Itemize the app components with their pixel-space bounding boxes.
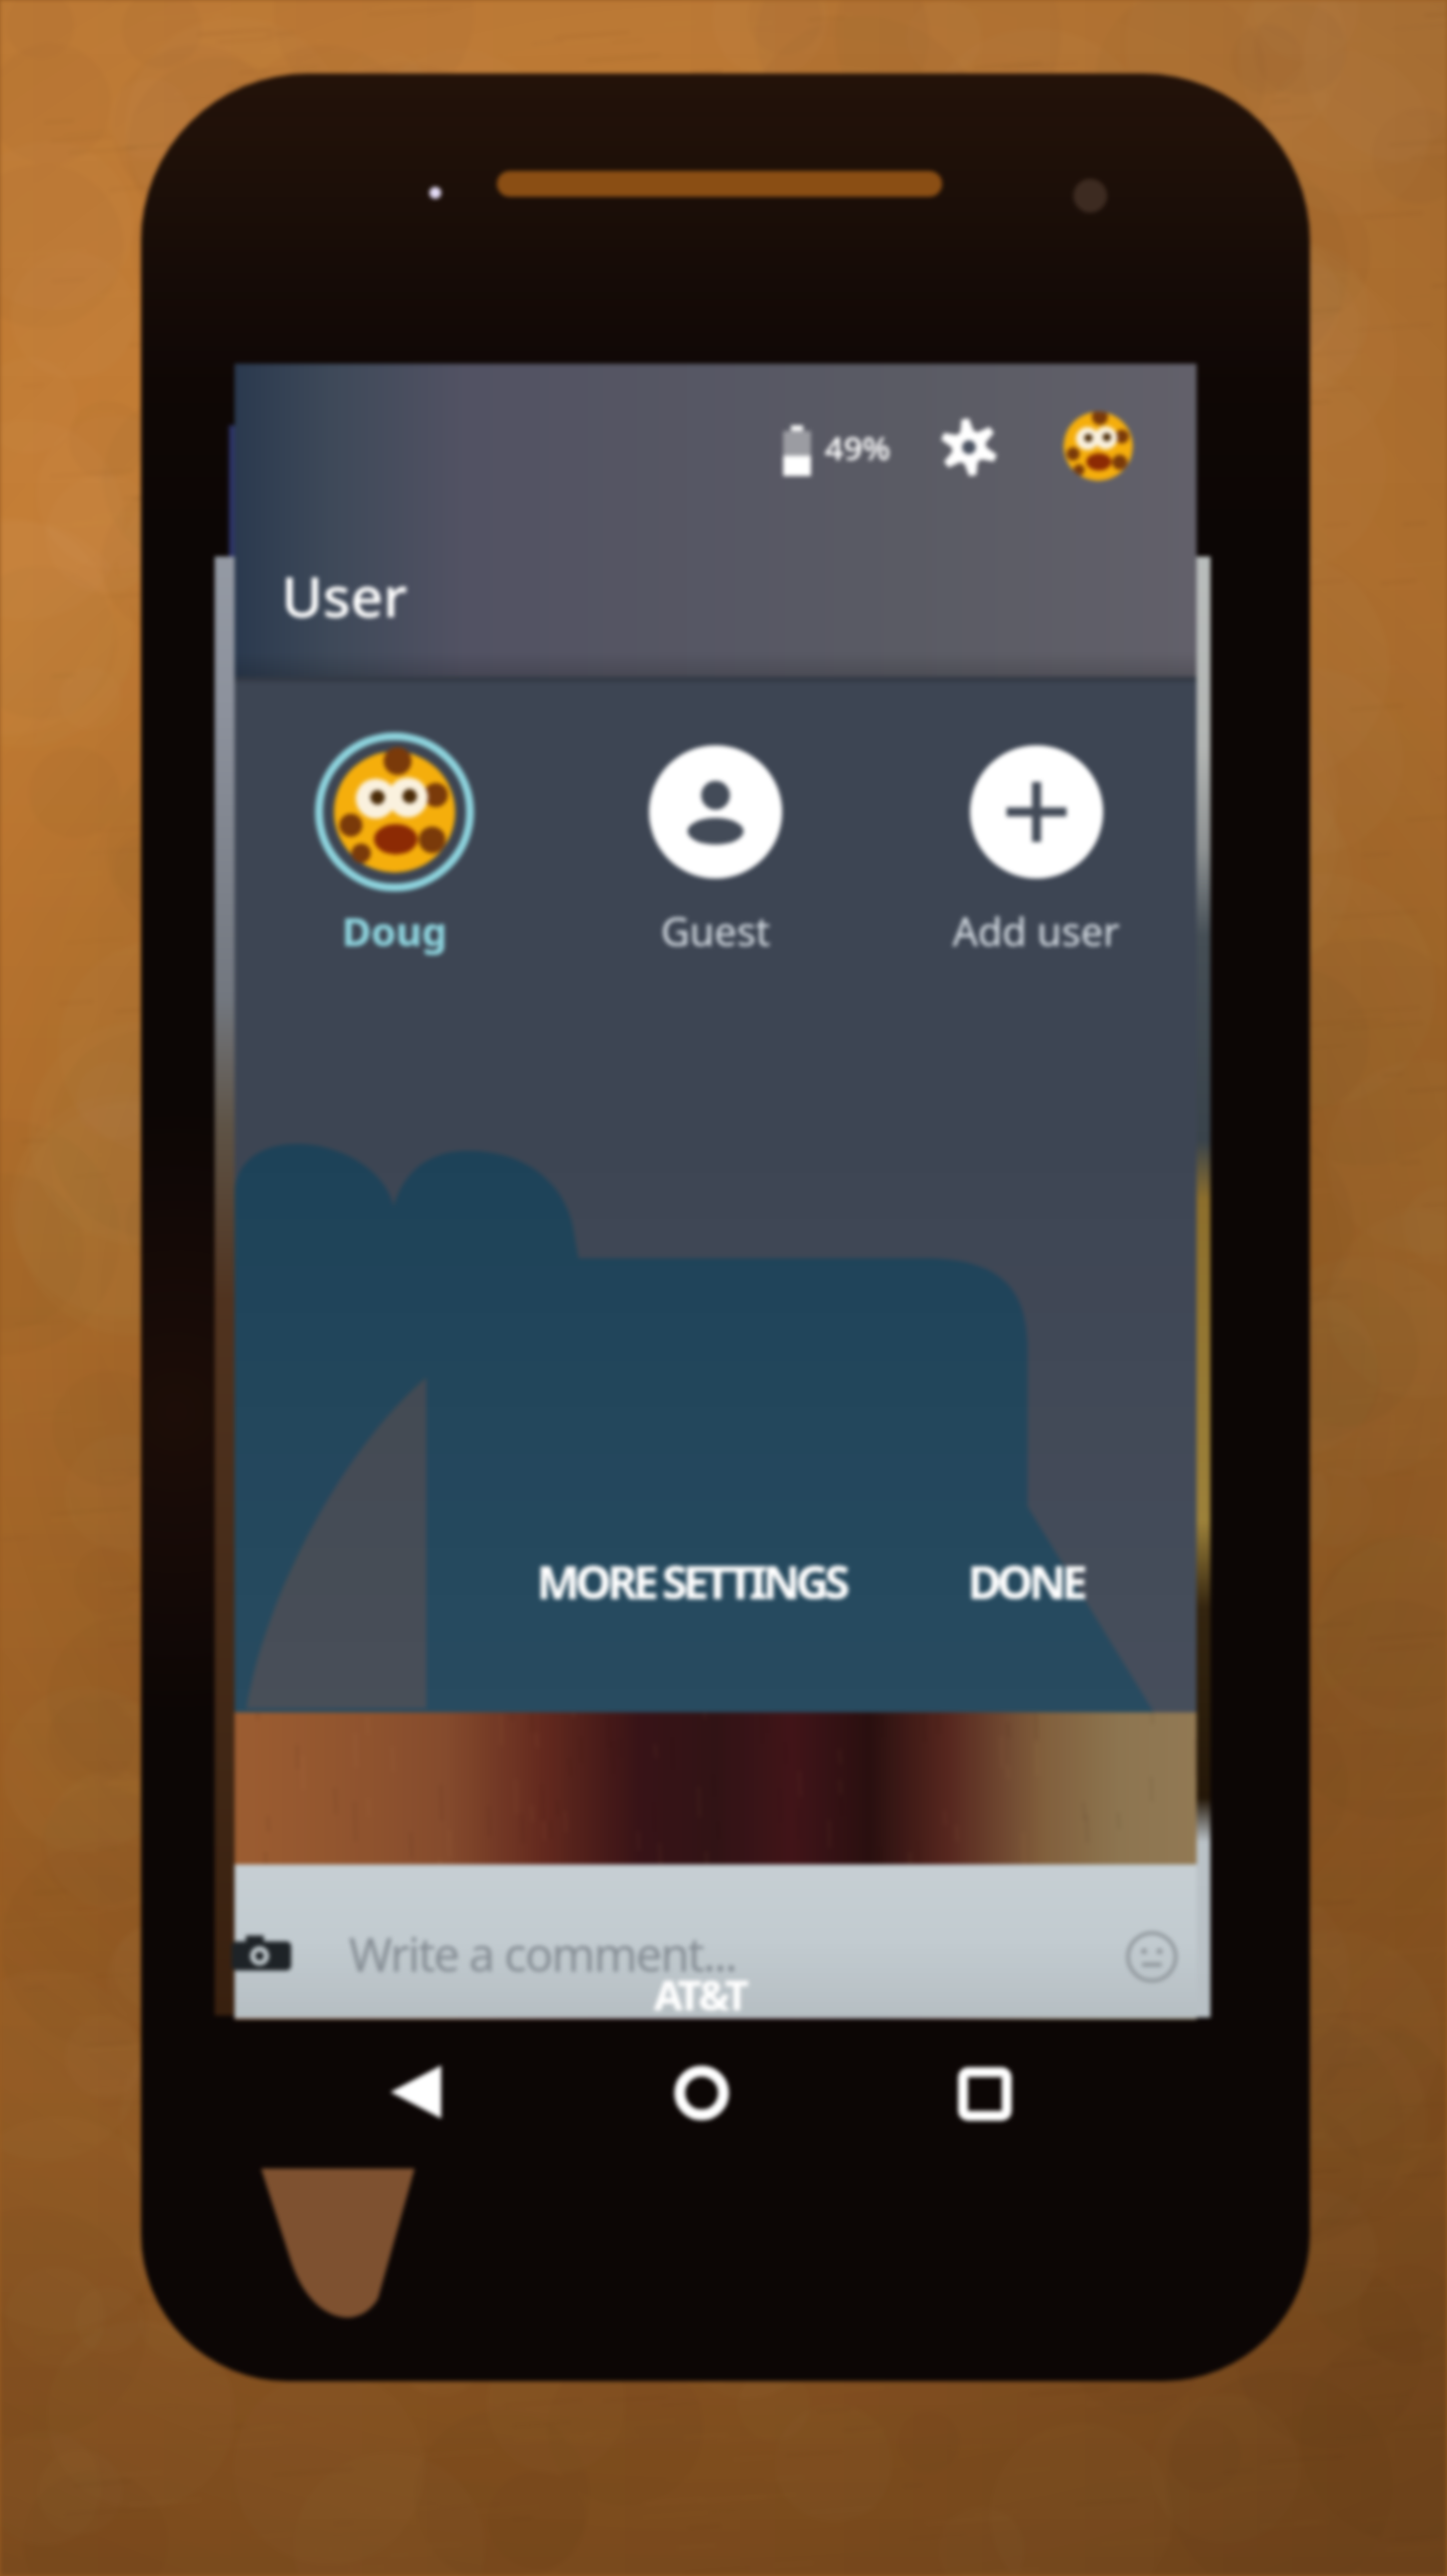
button[interactable]: MORE SETTINGS bbox=[513, 1532, 870, 1631]
staticText: AT&T bbox=[654, 1966, 747, 2022]
button[interactable]: Write a comment... bbox=[349, 1922, 736, 1986]
staticText: Guest bbox=[661, 903, 770, 957]
staticText: Add user bbox=[952, 903, 1120, 957]
button[interactable]: Add user bbox=[876, 724, 1197, 963]
button[interactable]: Guest bbox=[555, 724, 876, 963]
staticText: DONE bbox=[968, 1550, 1084, 1613]
button[interactable]: Home bbox=[674, 2065, 729, 2121]
staticText: User bbox=[281, 557, 407, 634]
staticText: Doug bbox=[342, 903, 447, 957]
button[interactable]: Current user avatar bbox=[1063, 411, 1133, 481]
button[interactable]: Emoji bbox=[1120, 1925, 1184, 1989]
button[interactable]: Camera bbox=[217, 1910, 306, 2000]
staticText: Write a comment... bbox=[349, 1922, 736, 1986]
button[interactable]: DONE bbox=[944, 1532, 1108, 1631]
button[interactable]: Recents bbox=[960, 2069, 1010, 2119]
button[interactable]: Doug bbox=[235, 724, 555, 963]
staticText: 49% bbox=[825, 425, 890, 470]
staticText: MORE SETTINGS bbox=[537, 1550, 846, 1613]
button[interactable]: Back bbox=[388, 2063, 445, 2121]
button[interactable]: Settings bbox=[935, 413, 1003, 481]
